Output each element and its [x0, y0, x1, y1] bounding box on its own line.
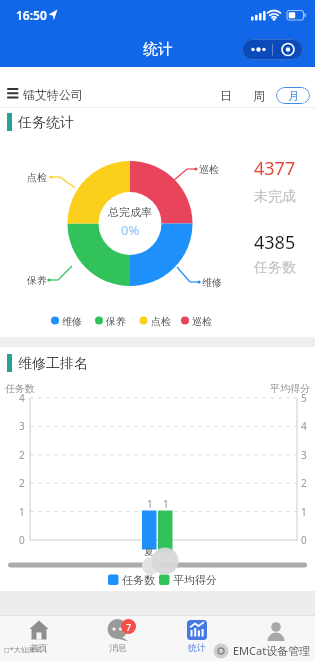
- staticText: 任务数: [122, 573, 155, 587]
- staticText: 点检: [27, 171, 47, 184]
- staticText: 夏: [144, 546, 153, 557]
- staticText: 未完成: [254, 188, 296, 206]
- staticText: 任务数: [5, 382, 35, 395]
- staticText: 平均得分: [173, 573, 217, 587]
- button[interactable]: [242, 39, 303, 60]
- staticText: 统计: [188, 642, 206, 653]
- staticText: 镭艾特公司: [23, 87, 83, 102]
- staticText: 5: [301, 391, 307, 405]
- staticText: 1: [163, 497, 169, 511]
- staticText: 维修: [202, 276, 222, 289]
- staticText: 日: [220, 88, 232, 103]
- staticText: 巡检: [192, 315, 212, 328]
- staticText: 3: [301, 448, 307, 462]
- button[interactable]: 日: [214, 84, 238, 106]
- staticText: 4385: [254, 230, 296, 255]
- staticText: 月: [288, 89, 299, 103]
- staticText: 点检: [151, 315, 171, 328]
- button[interactable]: 消息: [78, 615, 157, 661]
- staticText: 任务统计: [18, 114, 74, 132]
- staticText: EMCat设备管理: [233, 643, 311, 658]
- staticText: 0: [301, 533, 307, 547]
- staticText: 2: [19, 476, 25, 490]
- staticText: 1: [147, 497, 153, 511]
- staticText: 1: [301, 505, 307, 519]
- staticText: ◻*大仙测试丨: [4, 645, 49, 655]
- staticText: 4: [301, 419, 307, 433]
- button[interactable]: [0, 75, 210, 107]
- staticText: 保养: [27, 274, 47, 287]
- staticText: 维修: [62, 315, 82, 328]
- staticText: 2: [19, 448, 25, 462]
- staticText: 统计: [143, 40, 173, 59]
- staticText: 维修工排名: [18, 355, 88, 373]
- staticText: 0: [19, 533, 25, 547]
- staticText: 平均得分: [270, 382, 310, 395]
- button[interactable]: [236, 615, 315, 661]
- staticText: 巡检: [199, 163, 219, 176]
- staticText: 1: [19, 505, 25, 519]
- staticText: 首页: [30, 642, 48, 653]
- staticText: 周: [253, 88, 265, 103]
- staticText: 16:50: [16, 7, 47, 23]
- staticText: 消息: [109, 642, 127, 653]
- staticText: 保养: [106, 315, 126, 328]
- button[interactable]: 月: [276, 87, 310, 104]
- button[interactable]: 统计: [157, 615, 236, 661]
- staticText: 任务数: [254, 259, 296, 277]
- staticText: 7: [126, 621, 132, 633]
- button[interactable]: 周: [247, 84, 271, 106]
- staticText: 3: [19, 419, 25, 433]
- staticText: 4: [19, 391, 25, 405]
- staticText: 2: [301, 476, 307, 490]
- staticText: 0%: [121, 221, 140, 239]
- staticText: 总完成率: [108, 205, 152, 219]
- button[interactable]: 首页: [0, 615, 78, 661]
- staticText: 4377: [254, 156, 296, 181]
